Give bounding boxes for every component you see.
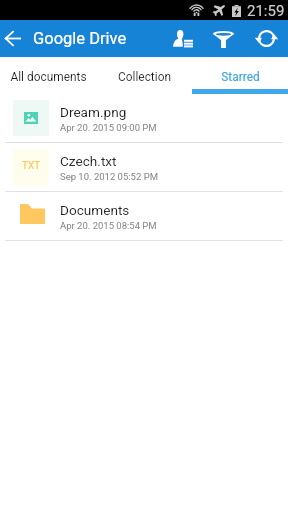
staticText: Collection: [118, 70, 171, 84]
staticText: Apr 20. 2015 09:00 PM: [60, 122, 157, 133]
button[interactable]: Documents: [0, 192, 288, 241]
button[interactable]: TXT: [0, 143, 288, 192]
staticText: Starred: [221, 70, 260, 84]
button[interactable]: Filter: [205, 20, 246, 57]
staticText: Apr 20. 2015 08:54 PM: [60, 220, 157, 231]
staticText: Sep 10. 2012 05:52 PM: [60, 171, 158, 182]
staticText: Google Drive: [33, 29, 127, 48]
staticText: 21:59: [247, 2, 285, 20]
button[interactable]: All documents: [0, 57, 96, 94]
staticText: All documents: [10, 70, 87, 84]
button[interactable]: Collection: [96, 57, 192, 94]
button[interactable]: Refresh: [246, 20, 287, 57]
staticText: TXT: [22, 160, 41, 172]
button[interactable]: Starred: [192, 57, 288, 94]
staticText: Documents: [60, 202, 130, 218]
staticText: Czech.txt: [60, 153, 117, 169]
button[interactable]: Accounts: [164, 20, 205, 57]
button[interactable]: Dream.png: [0, 94, 288, 143]
staticText: Dream.png: [60, 104, 127, 120]
button[interactable]: Navigate up: [0, 20, 26, 57]
